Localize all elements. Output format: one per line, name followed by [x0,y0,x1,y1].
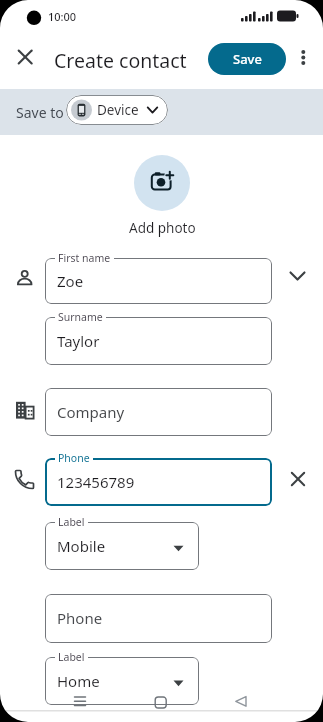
button[interactable] [143,686,179,716]
staticText: Phone [58,451,90,465]
button[interactable] [62,686,98,716]
button[interactable] [66,95,168,125]
staticText: Create contact [54,47,187,71]
button[interactable]: Save [208,43,286,75]
staticText: Save to [16,103,64,122]
staticText: First name [58,251,111,265]
staticText: Zoe [57,271,84,291]
staticText: 123456789 [57,472,135,492]
button[interactable] [45,522,199,570]
staticText: Taylor [57,331,100,351]
button[interactable] [293,45,315,73]
button[interactable] [45,458,272,506]
staticText: Label [58,650,85,664]
staticText: Mobile [57,536,106,556]
button[interactable] [45,388,272,436]
staticText: Company [57,402,125,422]
button[interactable] [15,45,43,73]
button[interactable] [45,317,272,365]
staticText: Label [58,515,85,529]
button[interactable] [45,594,272,643]
button[interactable] [223,686,259,716]
button[interactable] [45,657,199,705]
staticText: Surname [58,310,103,324]
staticText: Add photo [129,219,196,237]
staticText: Phone [57,608,103,628]
button[interactable] [45,258,272,304]
button[interactable] [134,155,190,211]
staticText: 10:00 [48,9,77,24]
staticText: Home [57,671,100,691]
staticText: Save [233,50,262,68]
staticText: Device [97,101,139,119]
